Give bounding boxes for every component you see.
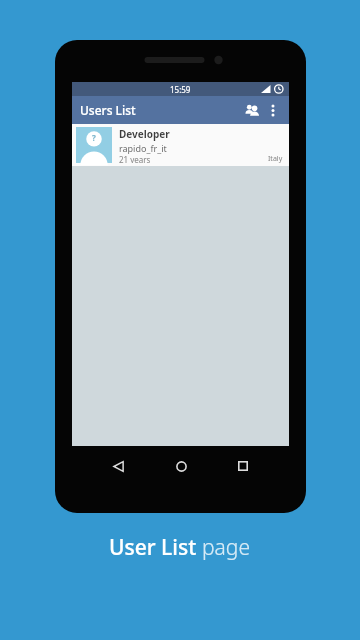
button[interactable]: Back xyxy=(101,449,135,483)
staticText: page xyxy=(202,533,251,562)
button[interactable]: Home xyxy=(164,449,198,483)
staticText: Users List xyxy=(80,102,136,118)
staticText: User List xyxy=(109,533,202,562)
staticText: ? xyxy=(92,132,96,143)
button[interactable]: More options xyxy=(265,99,281,121)
staticText: 21 years xyxy=(119,154,151,163)
staticText: Italy xyxy=(268,154,283,163)
staticText: 15:59 xyxy=(170,84,191,95)
button[interactable]: Recent apps xyxy=(226,449,260,483)
button[interactable]: People xyxy=(241,99,263,121)
staticText: rapido_fr_it xyxy=(119,142,167,154)
button[interactable]: ? xyxy=(72,124,289,166)
staticText: Developer xyxy=(119,127,170,141)
